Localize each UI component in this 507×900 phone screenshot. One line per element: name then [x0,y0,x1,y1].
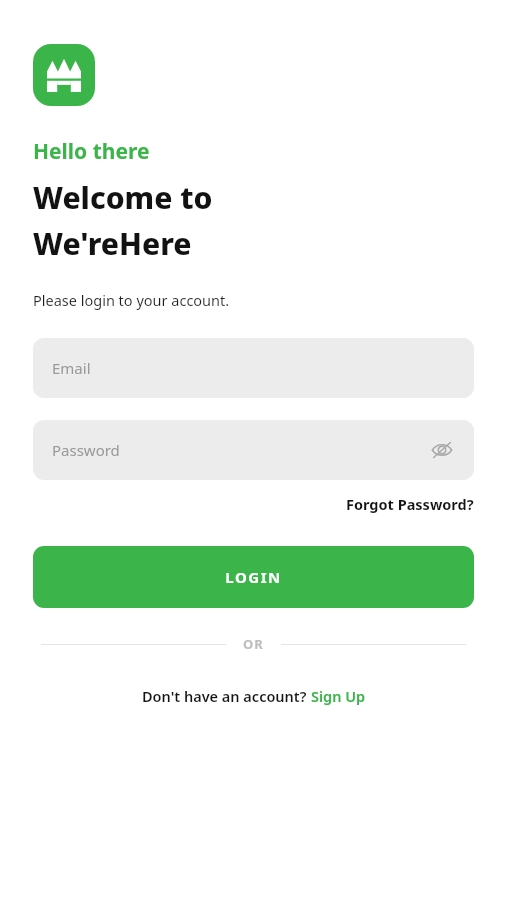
button[interactable]: Forgot Password? [346,491,474,517]
staticText: Hello there [33,137,150,166]
button[interactable]: Password [33,420,474,480]
button[interactable]: We'reHere logo [33,44,95,106]
staticText: OR [243,635,264,653]
button[interactable]: Email [33,338,474,398]
staticText: Email [52,358,91,378]
staticText: LOGIN [225,567,282,587]
staticText: Password [52,440,120,460]
button[interactable]: Sign Up [311,686,366,706]
staticText: Welcome to [33,177,213,218]
staticText: We'reHere [33,223,192,264]
button[interactable]: Show password [422,430,462,470]
staticText: Sign Up [311,686,366,706]
staticText: Forgot Password? [346,494,474,514]
staticText: Please login to your account. [33,290,230,310]
button[interactable]: LOGIN [33,546,474,608]
staticText: Don't have an account? [142,686,311,706]
